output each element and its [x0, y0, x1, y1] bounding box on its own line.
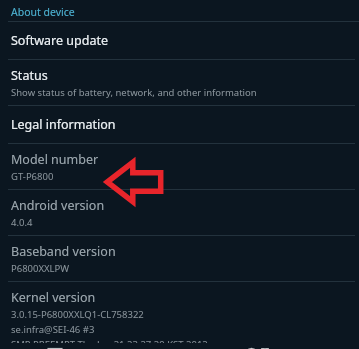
staticText: GT-P6800 — [11, 170, 54, 183]
staticText: 4.0.4 — [11, 216, 33, 229]
button[interactable]: Android version — [0, 190, 359, 235]
button[interactable]: Status — [0, 60, 359, 105]
staticText: se.infra@SEI-46 #3 — [11, 323, 95, 336]
staticText: About device — [11, 5, 75, 19]
button[interactable]: Model number — [0, 144, 359, 189]
button[interactable]: Software update — [0, 22, 359, 59]
staticText: Model number — [11, 151, 99, 168]
button[interactable]: Baseband version — [0, 236, 359, 281]
staticText: Show status of battery, network, and oth… — [11, 86, 257, 99]
staticText: Kernel version — [11, 289, 96, 306]
staticText: 3.0.15-P6800XXLQ1-CL758322 — [11, 308, 144, 321]
staticText: Android version — [11, 197, 105, 214]
button[interactable]: Kernel version — [0, 282, 359, 349]
staticText: Status — [11, 67, 48, 84]
staticText: Legal information — [11, 116, 116, 133]
staticText: Software update — [11, 32, 108, 49]
other: Annotation arrow pointing to Android ver… — [104, 159, 164, 205]
staticText: SMP PREEMPT Thu Jun 21 23:27:29 KST 2012 — [11, 338, 208, 343]
staticText: Baseband version — [11, 243, 116, 260]
staticText: P6800XXLPW — [11, 262, 70, 275]
button[interactable]: Legal information — [0, 106, 359, 143]
